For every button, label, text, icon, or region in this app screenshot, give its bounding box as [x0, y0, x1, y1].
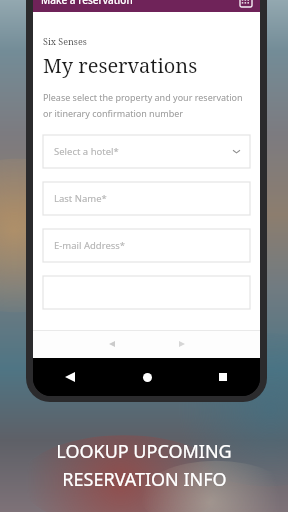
button[interactable]: Recents [210, 364, 236, 390]
staticText: Six Senses [43, 35, 87, 47]
staticText: Select a hotel* [54, 145, 119, 158]
button[interactable]: Back [57, 364, 83, 390]
button[interactable] [43, 276, 250, 309]
staticText: Last Name* [54, 192, 107, 205]
staticText: LOOKUP UPCOMING [56, 439, 232, 464]
staticText: Please select the property and your rese… [43, 91, 250, 119]
button[interactable]: E-mail Address* [43, 229, 250, 262]
button[interactable]: Select a hotel* [43, 135, 250, 168]
staticText: My reservations [43, 52, 198, 79]
button[interactable]: Forward [169, 331, 195, 357]
staticText: E-mail Address* [54, 239, 126, 252]
staticText: RESERVATION INFO [62, 467, 227, 492]
button[interactable]: Home [134, 364, 160, 390]
button[interactable]: Back [99, 331, 125, 357]
button[interactable]: Last Name* [43, 182, 250, 215]
button[interactable]: Calendar [237, 0, 255, 10]
staticText: Make a reservation [41, 0, 133, 7]
